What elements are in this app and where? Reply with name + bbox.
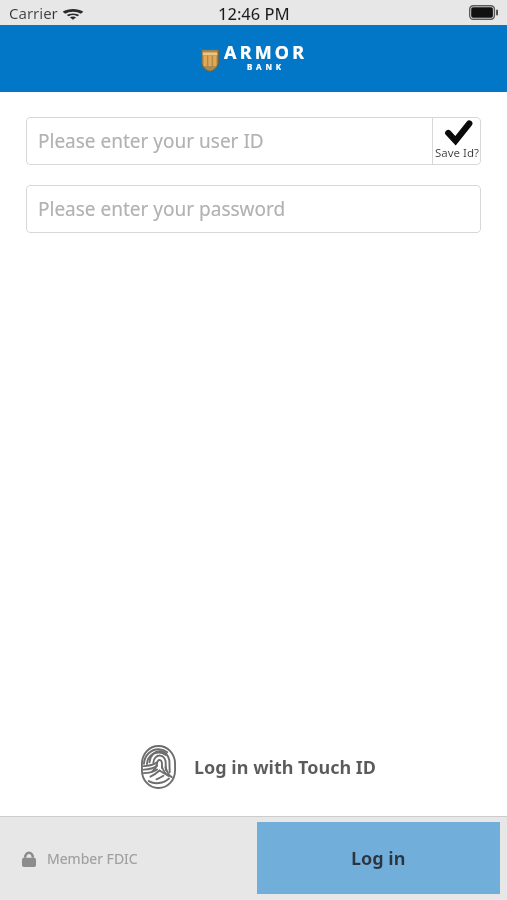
staticText: Please enter your user ID [38,128,264,154]
button[interactable]: Please enter your user ID [26,117,432,165]
staticText: ARMOR [224,40,308,65]
staticText: Log in with Touch ID [194,755,377,780]
button[interactable]: Member FDIC [22,849,138,868]
staticText: 12:46 PM [218,2,290,24]
button[interactable]: Please enter your password [26,185,481,233]
staticText: Save Id? [435,145,480,161]
staticText: Please enter your password [38,196,286,222]
staticText: BANK [247,61,285,72]
other: Touch ID [141,745,176,789]
button[interactable]: Log in [257,822,500,894]
button[interactable]: Touch ID [141,745,377,789]
staticText: Carrier [9,3,58,23]
staticText: Member FDIC [47,849,138,868]
button[interactable]: Save Id? [432,117,481,165]
staticText: Log in [351,846,406,871]
